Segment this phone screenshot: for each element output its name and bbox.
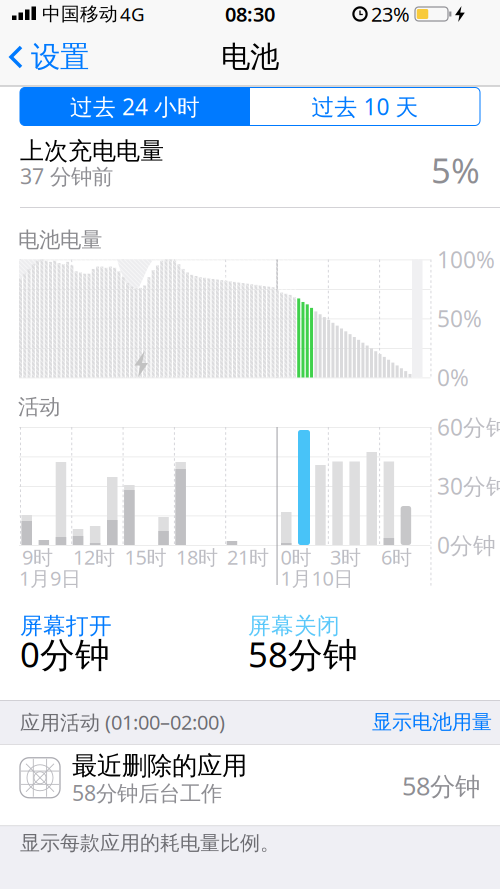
staticText: 18时 [176, 544, 218, 570]
staticText: 过去 10 天 [311, 91, 418, 121]
staticText: 15时 [124, 544, 166, 570]
staticText: 60分钟 [437, 412, 500, 442]
staticText: 37 分钟前 [20, 162, 113, 190]
staticText: 3时 [330, 544, 361, 570]
staticText: 58分钟后台工作 [72, 779, 222, 807]
staticText: 21时 [227, 544, 269, 570]
staticText: 58分钟 [248, 631, 358, 677]
staticText: 电池电量 [18, 227, 102, 253]
staticText: 中国移动 [42, 2, 118, 25]
staticText: 应用活动 (01:00–02:00) [20, 709, 225, 735]
staticText: 上次充电电量 [20, 136, 164, 166]
button[interactable]: 最近删除的应用 [0, 745, 500, 825]
staticText: 23% [371, 1, 410, 27]
button[interactable]: 过去 24 小时 [20, 87, 250, 125]
staticText: 屏幕打开 [20, 612, 112, 640]
staticText: 电池 [221, 39, 279, 75]
button[interactable]: 显示电池用量 [372, 710, 492, 734]
staticText: 显示每款应用的耗电量比例。 [20, 831, 280, 855]
staticText: 6时 [381, 544, 412, 570]
staticText: 屏幕关闭 [248, 612, 340, 640]
staticText: 9时 [22, 544, 53, 570]
staticText: 58分钟 [402, 769, 480, 802]
staticText: 1月9日 [19, 565, 81, 591]
staticText: 0时 [280, 544, 311, 570]
staticText: 活动 [18, 394, 60, 420]
staticText: 显示电池用量 [372, 710, 492, 734]
staticText: 4G [120, 2, 145, 26]
staticText: 50% [437, 303, 482, 333]
staticText: 1月10日 [280, 565, 353, 591]
staticText: 过去 24 小时 [70, 91, 200, 121]
staticText: 最近删除的应用 [72, 750, 247, 781]
staticText: 0分钟 [20, 631, 110, 677]
button[interactable]: 设置 [9, 39, 89, 75]
button[interactable]: 过去 10 天 [250, 87, 480, 125]
staticText: 0% [437, 362, 469, 392]
staticText: 30分钟 [437, 471, 500, 501]
staticText: 设置 [31, 39, 89, 75]
staticText: 12时 [73, 544, 115, 570]
staticText: 0分钟 [437, 530, 496, 560]
staticText: 5% [431, 147, 480, 193]
staticText: 100% [437, 244, 495, 274]
staticText: 08:30 [225, 1, 275, 27]
